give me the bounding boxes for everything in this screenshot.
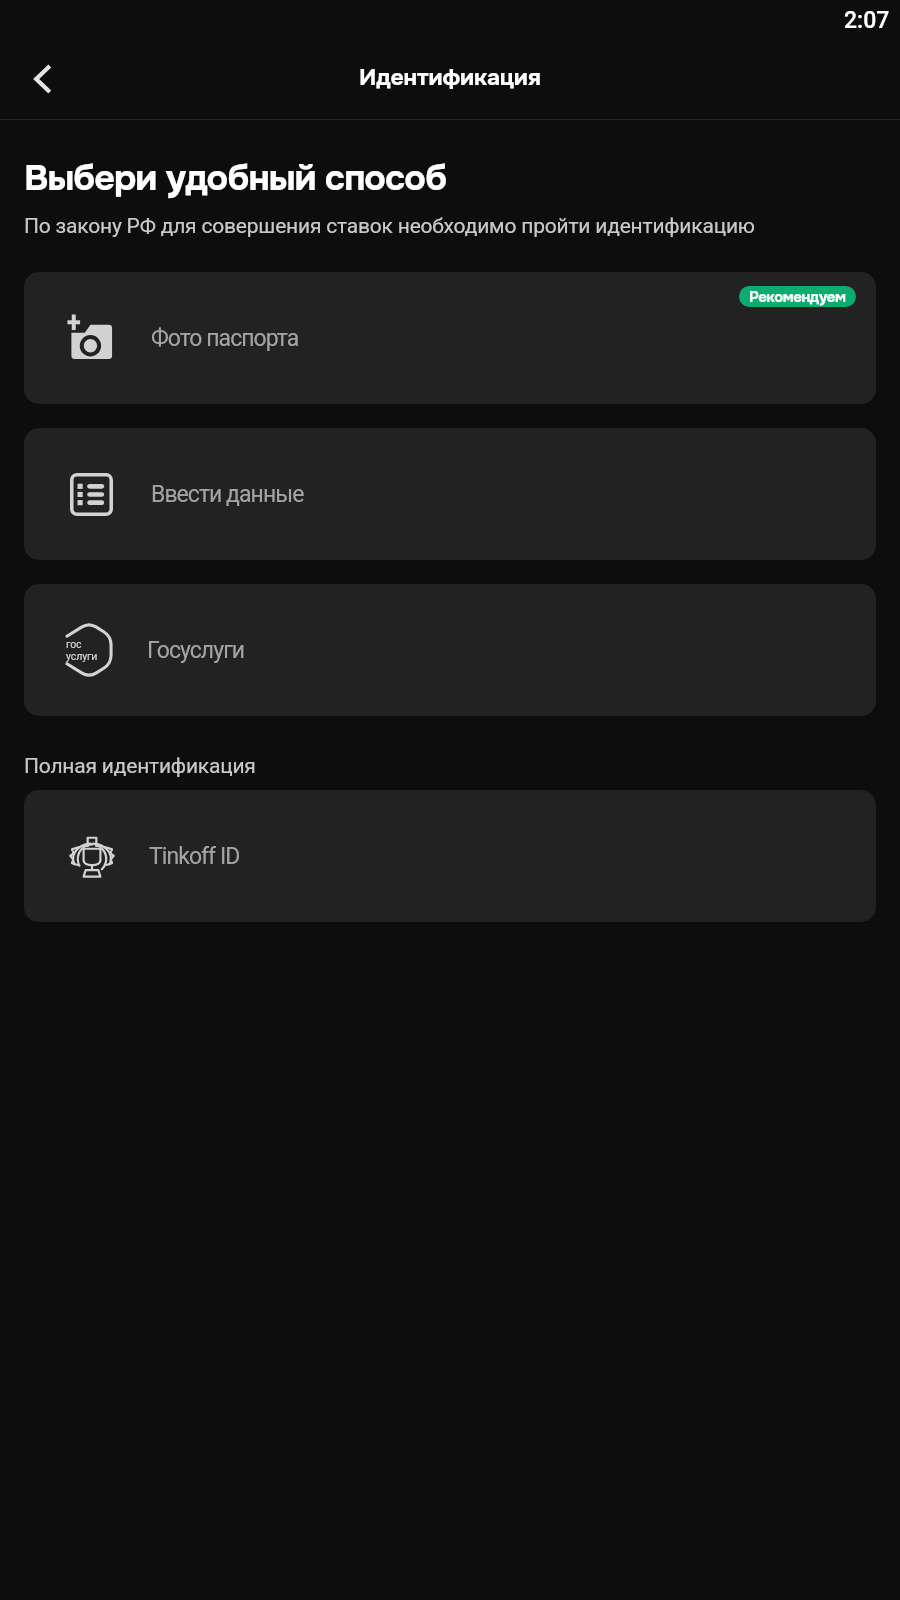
staticText: Tinkoff ID (149, 843, 240, 870)
button[interactable]: Ввести данные (24, 428, 876, 560)
button[interactable]: Back (11, 47, 75, 111)
staticText: Рекомендуем (749, 287, 846, 306)
staticText: гос (66, 638, 82, 650)
staticText: услуги (66, 650, 98, 662)
staticText: Ввести данные (151, 481, 304, 508)
button[interactable]: Tinkoff ID (24, 790, 876, 922)
staticText: Полная идентификация (24, 754, 256, 779)
staticText: Выбери удобный способ (24, 155, 447, 201)
staticText: По закону РФ для совершения ставок необх… (24, 214, 755, 239)
staticText: 2:07 (844, 7, 890, 34)
button[interactable]: Фото паспорта (24, 272, 876, 404)
staticText: Госуслуги (147, 637, 245, 664)
button[interactable]: гос (24, 584, 876, 716)
staticText: Фото паспорта (151, 325, 299, 352)
staticText: Идентификация (359, 63, 541, 92)
